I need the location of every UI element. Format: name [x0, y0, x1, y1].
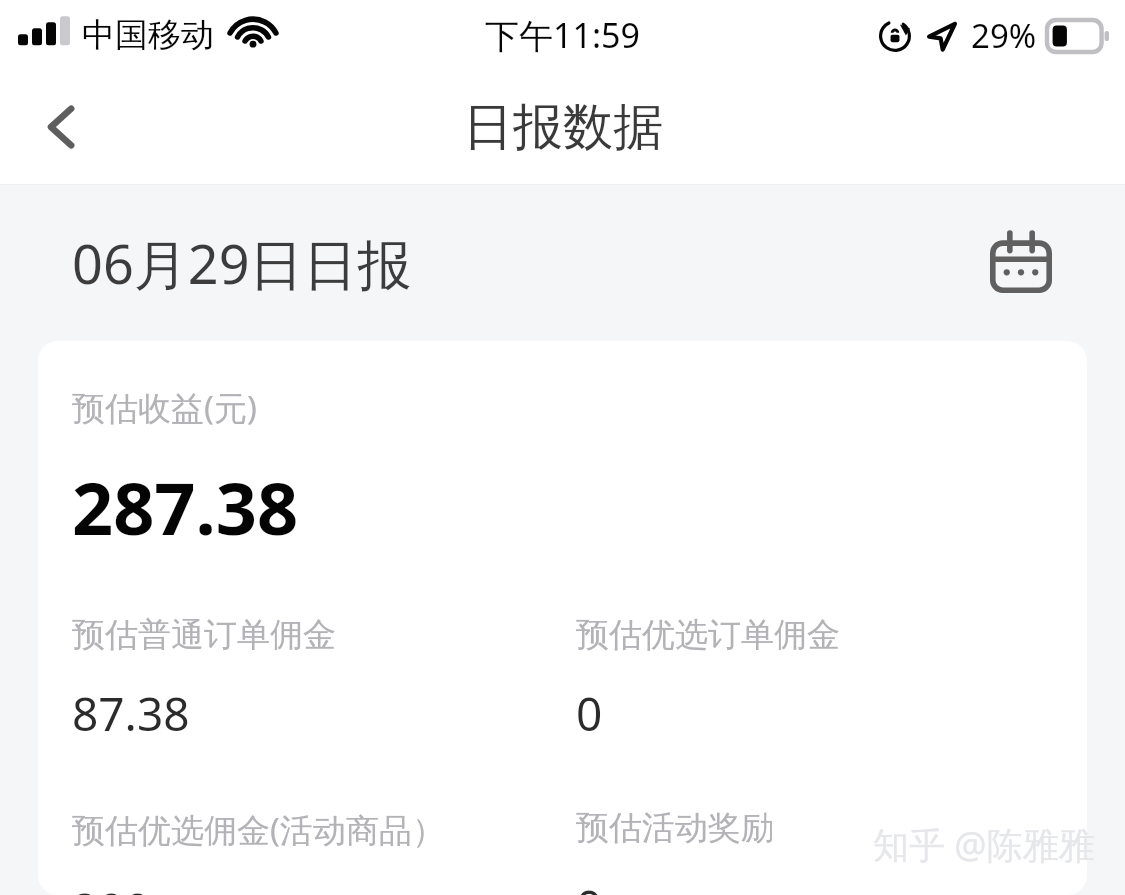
staticText: 200 [72, 878, 151, 895]
staticText: 0 [576, 682, 603, 745]
staticText: 0 [576, 875, 603, 895]
staticText: 87.38 [72, 682, 190, 745]
staticText: 预估收益(元) [72, 385, 257, 430]
staticText: 下午11:59 [485, 12, 640, 58]
staticText: 预估活动奖励 [576, 807, 774, 849]
button[interactable]: 预估收益(元) [38, 341, 1087, 895]
staticText: 预估优选订单佣金 [576, 614, 840, 656]
staticText: 预估优选佣金(活动商品） [72, 807, 445, 852]
button[interactable]: Back [10, 75, 114, 179]
staticText: 知乎 @陈雅雅 [873, 820, 1095, 869]
staticText: 06月29日日报 [72, 226, 412, 300]
staticText: 预估普通订单佣金 [72, 614, 336, 656]
staticText: 29% [971, 13, 1037, 58]
button[interactable]: Select date [985, 227, 1057, 299]
staticText: 287.38 [72, 458, 299, 556]
staticText: 日报数据 [463, 96, 663, 159]
staticText: 中国移动 [82, 14, 214, 56]
